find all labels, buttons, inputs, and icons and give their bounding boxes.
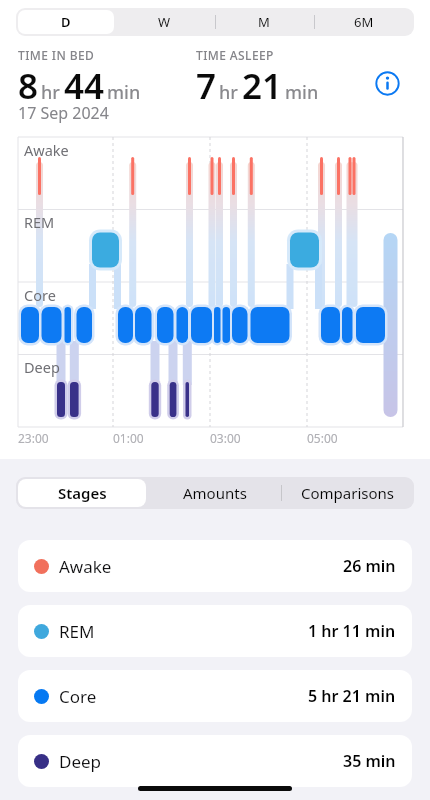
staticText: min (107, 80, 141, 105)
staticText: M (258, 13, 270, 31)
staticText: 23:00 (18, 430, 49, 446)
staticText: hr (219, 80, 238, 105)
staticText: Comparisons (301, 483, 395, 503)
staticText: Core (24, 285, 56, 305)
staticText: Awake (24, 140, 69, 160)
staticText: min (285, 80, 319, 105)
button[interactable]: Comparisons (281, 477, 414, 509)
staticText: Awake (59, 555, 112, 578)
staticText: TIME IN BED (18, 47, 95, 63)
staticText: Amounts (183, 483, 247, 503)
staticText: hr (41, 80, 60, 105)
staticText: 21 (242, 62, 283, 110)
staticText: 05:00 (307, 430, 338, 446)
staticText: Deep (24, 357, 60, 377)
staticText: Deep (59, 750, 102, 773)
staticText: D (61, 13, 71, 31)
button[interactable]: REM (18, 605, 412, 657)
staticText: 01:00 (113, 430, 144, 446)
staticText: 03:00 (210, 430, 241, 446)
staticText: 8 (18, 62, 39, 110)
button[interactable]: Deep (18, 735, 412, 787)
button[interactable]: 6M (314, 8, 414, 36)
staticText: W (158, 13, 171, 31)
button[interactable]: W (115, 8, 214, 36)
staticText: REM (59, 620, 95, 643)
staticText: 7 (196, 62, 217, 110)
staticText: Stages (58, 483, 107, 503)
staticText: 1 hr 11 min (308, 620, 396, 642)
staticText: 26 min (343, 555, 396, 577)
staticText: TIME ASLEEP (196, 47, 274, 63)
staticText: 6M (354, 13, 374, 31)
staticText: Core (59, 685, 97, 708)
button[interactable]: Core (18, 670, 412, 722)
button[interactable]: Amounts (148, 477, 281, 509)
button[interactable]: D (16, 8, 115, 36)
staticText: 5 hr 21 min (308, 685, 396, 707)
staticText: 44 (64, 62, 105, 110)
button[interactable]: Awake (18, 540, 412, 592)
staticText: REM (24, 212, 55, 232)
staticText: 17 Sep 2024 (18, 102, 109, 124)
button[interactable]: Stages (16, 477, 148, 509)
button[interactable]: M (214, 8, 314, 36)
button[interactable] (374, 70, 401, 97)
staticText: 35 min (343, 750, 396, 772)
